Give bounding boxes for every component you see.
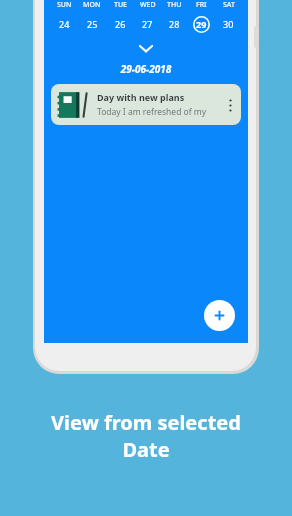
- staticText: SAT: [223, 0, 235, 10]
- staticText: MON: [83, 0, 101, 10]
- staticText: WED: [140, 0, 156, 10]
- staticText: 29-06-2018: [44, 62, 248, 76]
- staticText: 26: [115, 18, 126, 30]
- staticText: TUE: [114, 0, 127, 10]
- button[interactable]: Expand calendar: [44, 40, 248, 56]
- staticText: Day with new plans: [97, 91, 185, 103]
- button[interactable]: More options: [222, 89, 238, 121]
- button[interactable]: Add note: [204, 300, 235, 331]
- staticText: THU: [167, 0, 182, 10]
- button[interactable]: 28: [161, 15, 188, 33]
- staticText: Today I am refreshed of my ideas and: [97, 106, 222, 118]
- staticText: 27: [142, 18, 153, 30]
- button[interactable]: Day with new plans: [51, 84, 241, 125]
- staticText: FRI: [196, 0, 207, 10]
- staticText: 29: [196, 18, 207, 30]
- button[interactable]: 27: [134, 15, 161, 33]
- staticText: 30: [223, 18, 234, 30]
- staticText: View from selected: [51, 409, 241, 436]
- staticText: 24: [59, 18, 70, 30]
- button[interactable]: 30: [215, 15, 242, 33]
- button[interactable]: 26: [106, 15, 134, 33]
- staticText: Date: [122, 436, 170, 463]
- button[interactable]: 25: [78, 15, 106, 33]
- staticText: SUN: [57, 0, 72, 10]
- button[interactable]: 29: [188, 15, 215, 33]
- staticText: 25: [87, 18, 98, 30]
- staticText: 28: [169, 18, 180, 30]
- button[interactable]: 24: [50, 15, 78, 33]
